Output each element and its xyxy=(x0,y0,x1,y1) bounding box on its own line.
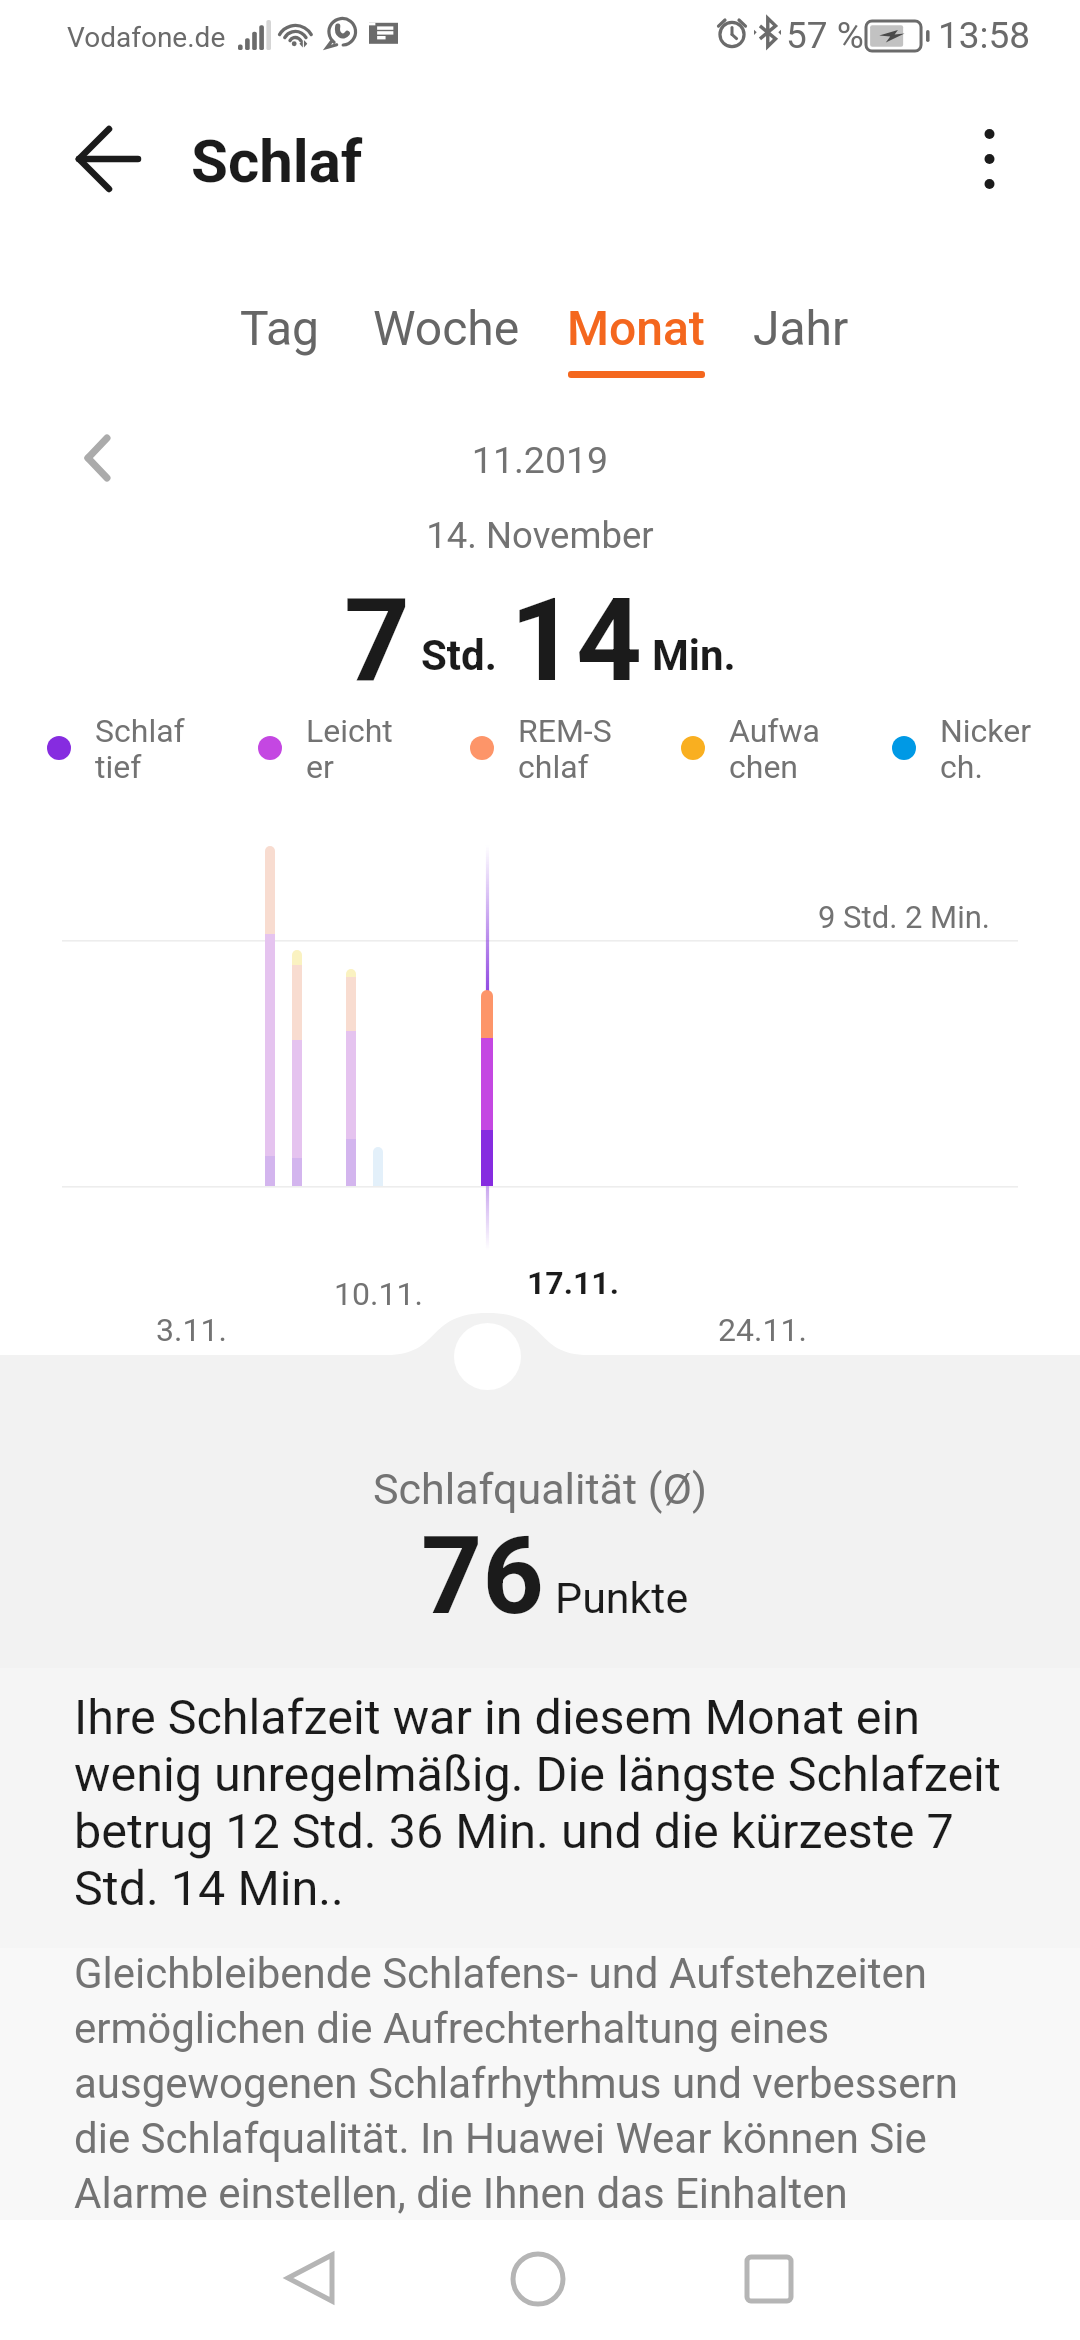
staticText: 14. November xyxy=(0,514,1080,557)
staticText: 24.11. xyxy=(718,1311,807,1349)
button[interactable]: More options xyxy=(940,109,1040,209)
staticText: Jahr xyxy=(753,300,849,356)
button[interactable]: Back xyxy=(264,2238,356,2330)
staticText: 76 xyxy=(421,1514,544,1639)
staticText: 9 Std. 2 Min. xyxy=(818,899,991,935)
button[interactable]: Jahr xyxy=(733,297,869,389)
staticText: Leicht er xyxy=(306,712,393,785)
staticText: Schlaf xyxy=(191,126,363,196)
staticText: 14 xyxy=(510,573,642,708)
staticText: 17.11. xyxy=(527,1264,619,1302)
staticText: Gleichbleibende Schlafens- und Aufstehze… xyxy=(74,1949,979,2218)
button[interactable]: Tag xyxy=(216,297,343,389)
staticText: 57 % xyxy=(786,14,864,57)
button[interactable]: Previous month xyxy=(55,424,135,504)
staticText: Min. xyxy=(652,631,736,680)
staticText: Punkte xyxy=(555,1573,689,1623)
staticText: Nicker ch. xyxy=(940,712,1032,785)
staticText: Woche xyxy=(373,300,520,356)
staticText: Std. xyxy=(421,631,497,680)
staticText: 13:58 xyxy=(938,14,1031,57)
staticText: Aufwa chen xyxy=(729,712,820,785)
staticText: 3.11. xyxy=(156,1311,227,1349)
staticText: Schlaf tief xyxy=(95,712,185,785)
button[interactable]: Monat xyxy=(545,297,727,389)
staticText: REM-S chlaf xyxy=(518,712,612,785)
button[interactable]: Back xyxy=(48,108,148,208)
staticText: 7 xyxy=(344,573,410,708)
staticText: Tag xyxy=(240,300,320,356)
staticText: Ihre Schlafzeit war in diesem Monat ein … xyxy=(74,1689,1019,1917)
button[interactable]: Home xyxy=(492,2239,584,2331)
staticText: Monat xyxy=(567,300,705,356)
button[interactable]: Woche xyxy=(350,297,543,389)
staticText: 10.11. xyxy=(334,1275,423,1313)
button[interactable]: Recent apps xyxy=(723,2239,815,2331)
staticText: 11.2019 xyxy=(0,438,1080,482)
staticText: Vodafone.de xyxy=(67,21,226,54)
staticText: Schlafqualität (Ø) xyxy=(0,1464,1080,1514)
